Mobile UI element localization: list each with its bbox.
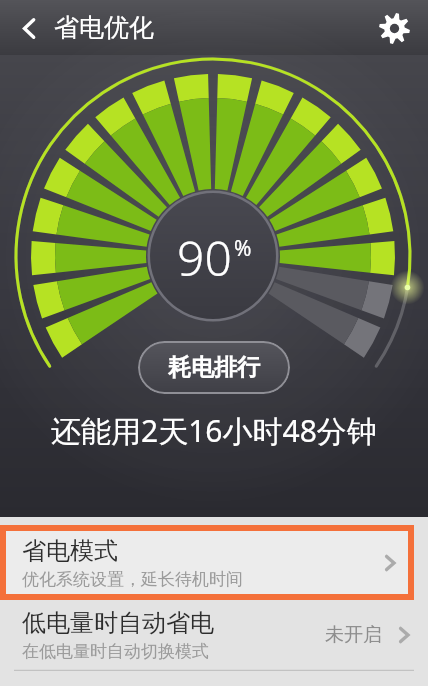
button[interactable]: 低电量时自动省电	[0, 600, 428, 670]
staticText: 未开启	[325, 623, 382, 647]
staticText: 省电模式	[22, 536, 118, 566]
staticText: 低电量时自动省电	[22, 608, 214, 638]
staticText: 耗电排行	[168, 353, 260, 382]
staticText: 还能用2天16小时48分钟	[51, 410, 377, 451]
staticText: 90	[177, 225, 232, 290]
staticText: 在低电量时自动切换模式	[22, 641, 209, 662]
staticText: %	[234, 234, 252, 263]
staticText: 省电优化	[54, 12, 154, 43]
button[interactable]: 省电模式	[0, 525, 414, 600]
button[interactable]: Settings	[370, 4, 418, 52]
staticText: 优化系统设置，延长待机时间	[22, 569, 243, 590]
button[interactable]: 耗电排行	[138, 341, 290, 394]
button[interactable]: Back	[8, 7, 50, 49]
